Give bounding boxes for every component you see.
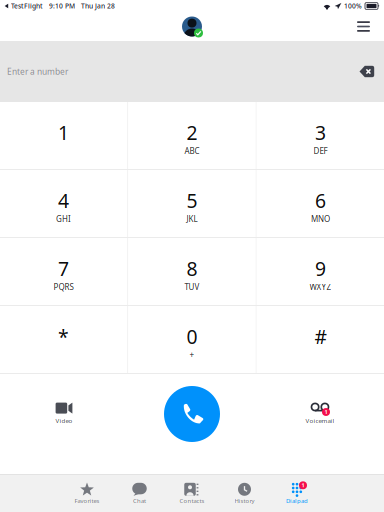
button[interactable]: Video <box>0 374 128 474</box>
button[interactable]: Contacts <box>166 474 218 512</box>
button[interactable]: 8 <box>128 238 256 305</box>
button[interactable]: 0 <box>128 306 256 373</box>
staticText: 3 <box>315 119 326 146</box>
staticText: ABC <box>184 146 199 156</box>
button[interactable]: Menu <box>350 12 377 41</box>
button[interactable]: 1 <box>0 102 127 169</box>
button[interactable]: Delete <box>359 65 375 78</box>
button[interactable]: 9 <box>257 238 384 305</box>
button[interactable]: Call <box>128 374 256 474</box>
button[interactable]: 2 <box>128 102 256 169</box>
staticText: 1 <box>301 482 304 489</box>
staticText: 0 <box>186 323 197 350</box>
button[interactable]: 1 <box>271 474 323 512</box>
staticText: 2 <box>186 119 197 146</box>
button[interactable]: * <box>0 306 127 373</box>
staticText: Dialpad <box>286 497 308 505</box>
staticText: MNO <box>311 214 330 224</box>
staticText: 5 <box>186 187 197 214</box>
staticText: 9:10 PM <box>49 1 75 11</box>
staticText: * <box>58 323 69 350</box>
staticText: 1 <box>58 119 69 146</box>
staticText: TUV <box>184 282 199 292</box>
staticText: History <box>234 497 254 505</box>
staticText: 100% <box>344 1 362 11</box>
staticText: 8 <box>186 255 197 282</box>
staticText: GHI <box>56 214 71 224</box>
staticText: 7 <box>58 255 69 282</box>
staticText: Thu Jan 28 <box>81 1 115 11</box>
staticText: Enter a number <box>7 66 68 77</box>
staticText: Video <box>55 416 72 425</box>
button[interactable]: # <box>257 306 384 373</box>
button[interactable]: History <box>218 474 271 512</box>
staticText: 4 <box>58 187 69 214</box>
button[interactable]: 6 <box>257 170 384 237</box>
staticText: TestFlight <box>11 1 43 11</box>
button[interactable]: 7 <box>0 238 127 305</box>
staticText: Contacts <box>179 497 204 505</box>
staticText: + <box>189 350 194 360</box>
staticText: Favorites <box>74 497 99 505</box>
button[interactable]: 3 <box>257 102 384 169</box>
staticText: JKL <box>186 214 197 224</box>
button[interactable]: Chat <box>113 474 166 512</box>
staticText: DEF <box>313 146 327 156</box>
button[interactable]: Favorites <box>61 474 113 512</box>
staticText: Voicemail <box>305 416 334 425</box>
staticText: 1 <box>324 408 327 416</box>
staticText: # <box>314 323 326 350</box>
staticText: 9 <box>315 255 326 282</box>
staticText: WXYZ <box>309 282 331 292</box>
staticText: 6 <box>315 187 326 214</box>
button[interactable]: 4 <box>0 170 127 237</box>
button[interactable]: 5 <box>128 170 256 237</box>
button[interactable]: 1 <box>256 374 384 474</box>
staticText: PQRS <box>54 282 74 292</box>
staticText: Chat <box>133 497 146 505</box>
